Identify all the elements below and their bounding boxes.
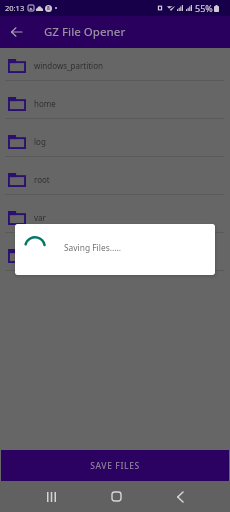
staticText: windows_partition (34, 60, 103, 71)
staticText: 55% (195, 2, 213, 14)
staticText: log (34, 136, 46, 147)
button[interactable]: Recent apps (28, 481, 75, 512)
button[interactable]: usr (0, 233, 230, 271)
staticText: root (34, 174, 50, 185)
button[interactable]: Home (84, 481, 148, 512)
button[interactable]: Back (0, 16, 33, 48)
staticText: 8 (47, 5, 50, 12)
button[interactable]: log (0, 119, 230, 157)
button[interactable]: var (0, 195, 230, 233)
staticText: 20:13 (5, 3, 25, 13)
button[interactable]: SAVE FILES (1, 450, 229, 481)
button[interactable]: Back (148, 481, 212, 512)
button[interactable]: root (0, 157, 230, 195)
button[interactable]: home (0, 81, 230, 119)
staticText: var (34, 212, 46, 223)
staticText: GZ File Opener (44, 24, 126, 40)
button[interactable]: windows_partition (0, 48, 230, 81)
staticText: home (34, 98, 56, 109)
staticText: Saving Files..... (64, 242, 121, 253)
staticText: SAVE FILES (90, 460, 140, 472)
